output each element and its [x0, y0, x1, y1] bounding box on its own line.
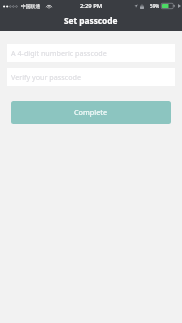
other: Battery 59 percent — [161, 3, 175, 9]
button[interactable]: A 4-digit numberic passcode — [7, 44, 175, 62]
staticText: 中国联通 — [21, 3, 41, 9]
other: Cellular signal strength — [3, 4, 17, 9]
other: Navigation in progress — [178, 4, 181, 8]
staticText: Complete — [74, 107, 108, 117]
staticText: 59% — [150, 3, 160, 9]
button[interactable]: Complete — [11, 101, 171, 124]
other: Rotation lock — [140, 4, 144, 9]
button[interactable]: Verify your passcode — [7, 68, 175, 86]
staticText: A 4-digit numberic passcode — [11, 48, 107, 58]
staticText: 2:29 PM — [80, 2, 103, 10]
other: Location services active — [134, 4, 138, 8]
staticText: Set passcode — [64, 15, 118, 26]
staticText: Verify your passcode — [11, 72, 81, 82]
other: Wi-Fi — [46, 4, 52, 9]
